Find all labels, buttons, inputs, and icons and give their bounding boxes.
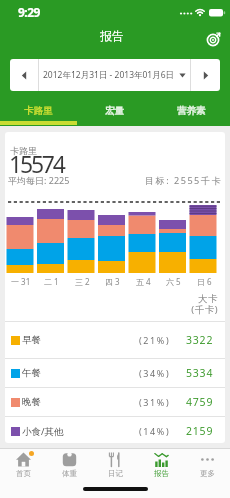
staticText: 4759 bbox=[186, 395, 214, 409]
button[interactable]: 营养素 bbox=[153, 91, 230, 126]
button[interactable] bbox=[10, 59, 38, 91]
staticText: 2159 bbox=[186, 424, 214, 438]
staticText: 卡路里 bbox=[10, 145, 37, 156]
button[interactable]: 2012年12月31日 - 2013年01月6日 bbox=[39, 59, 190, 91]
staticText: 四 3 bbox=[105, 276, 120, 287]
button[interactable]: 卡路里 bbox=[0, 91, 76, 126]
button[interactable]: 晚餐 bbox=[5, 388, 225, 416]
staticText: 报告 bbox=[100, 28, 124, 43]
staticText: (14%) bbox=[139, 425, 171, 437]
staticText: 日记 bbox=[108, 469, 123, 478]
button[interactable]: 宏量 bbox=[76, 91, 153, 126]
button[interactable]: 小食/其他 bbox=[5, 417, 225, 443]
button[interactable]: 体重 bbox=[46, 448, 92, 498]
staticText: 体重 bbox=[62, 469, 77, 478]
button[interactable]: 更多 bbox=[184, 448, 230, 498]
staticText: 三 2 bbox=[75, 276, 90, 287]
staticText: 9:29 bbox=[18, 4, 40, 20]
staticText: 五 4 bbox=[136, 276, 151, 287]
staticText: 首页 bbox=[16, 469, 31, 478]
button[interactable]: 首页 bbox=[0, 448, 46, 498]
staticText: (21%) bbox=[139, 334, 171, 346]
staticText: 六 5 bbox=[166, 276, 181, 287]
staticText: 小食/其他 bbox=[22, 425, 64, 438]
staticText: 3322 bbox=[186, 333, 214, 347]
staticText: 大卡 (千卡) bbox=[191, 293, 218, 316]
staticText: 更多 bbox=[200, 469, 215, 478]
button[interactable] bbox=[191, 59, 220, 91]
button[interactable]: 午餐 bbox=[5, 359, 225, 387]
button[interactable]: 报告 bbox=[138, 448, 184, 498]
staticText: 早餐 bbox=[22, 334, 41, 346]
staticText: (34%) bbox=[139, 367, 171, 379]
staticText: 卡路里 bbox=[24, 105, 53, 117]
button[interactable]: 日记 bbox=[92, 448, 138, 498]
staticText: 2012年12月31日 - 2013年01月6日 bbox=[43, 69, 175, 81]
staticText: 营养素 bbox=[177, 105, 206, 117]
staticText: (31%) bbox=[139, 396, 171, 408]
staticText: 一 31 bbox=[11, 276, 31, 287]
staticText: 二 1 bbox=[44, 276, 59, 287]
staticText: 5334 bbox=[186, 366, 214, 380]
staticText: 平均每日: 2225 bbox=[8, 174, 70, 186]
staticText: 午餐 bbox=[22, 367, 41, 379]
button[interactable]: 早餐 bbox=[5, 322, 225, 358]
staticText: 目标: 2555千卡 bbox=[145, 174, 222, 186]
staticText: 晚餐 bbox=[22, 396, 41, 408]
staticText: 日 6 bbox=[197, 276, 212, 287]
staticText: 15574 bbox=[9, 148, 64, 179]
staticText: 宏量 bbox=[105, 105, 124, 117]
button[interactable] bbox=[206, 32, 221, 47]
staticText: 报告 bbox=[154, 469, 169, 478]
